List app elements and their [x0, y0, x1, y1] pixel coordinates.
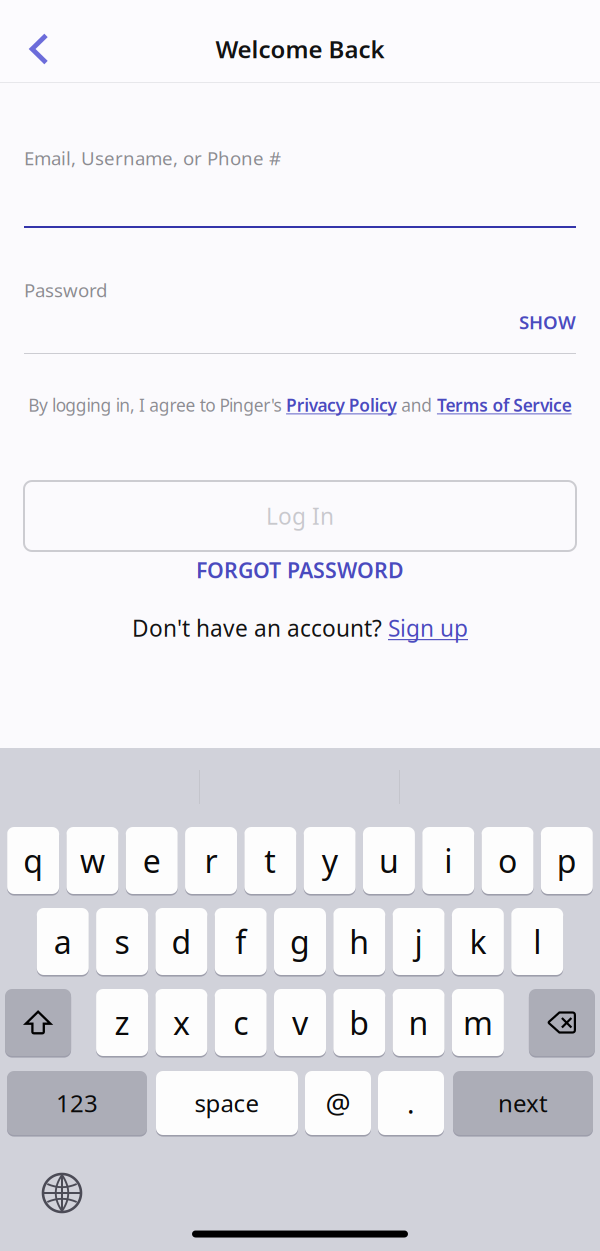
button[interactable]: space — [156, 1070, 298, 1136]
button[interactable]: next — [453, 1070, 593, 1136]
staticText: space — [194, 1087, 259, 1119]
button[interactable]: a — [37, 907, 89, 976]
button[interactable]: j — [393, 907, 445, 976]
button[interactable]: e — [126, 826, 178, 895]
button[interactable]: f — [215, 907, 267, 976]
staticText: s — [115, 920, 130, 963]
button[interactable]: SHOW — [24, 311, 576, 333]
button[interactable]: Terms of Service — [437, 393, 572, 416]
button[interactable]: c — [215, 988, 267, 1057]
staticText: w — [80, 839, 105, 882]
button[interactable]: v — [274, 988, 326, 1057]
button[interactable]: g — [274, 907, 326, 976]
staticText: c — [233, 1001, 248, 1044]
staticText: a — [54, 920, 72, 963]
button[interactable]: s — [96, 907, 148, 976]
staticText: Log In — [266, 501, 334, 531]
staticText: Privacy Policy — [286, 393, 397, 416]
staticText: SHOW — [519, 310, 576, 334]
staticText: h — [349, 920, 369, 963]
staticText: l — [533, 920, 541, 963]
button[interactable]: n — [393, 988, 445, 1057]
button[interactable]: r — [185, 826, 237, 895]
staticText: Don't have an account? — [132, 613, 388, 643]
staticText: g — [290, 920, 310, 963]
staticText: k — [469, 920, 486, 963]
staticText: u — [379, 839, 399, 882]
button[interactable]: m — [452, 988, 504, 1057]
button[interactable]: Privacy Policy — [286, 393, 397, 416]
staticText: q — [23, 839, 43, 882]
staticText: @ — [325, 1084, 350, 1122]
staticText: Welcome Back — [215, 33, 384, 65]
staticText: j — [415, 920, 423, 963]
staticText: Terms of Service — [437, 393, 572, 416]
button[interactable]: k — [452, 907, 504, 976]
button[interactable]: i — [422, 826, 474, 895]
button[interactable]: l — [511, 907, 563, 976]
button[interactable]: FORGOT PASSWORD — [150, 555, 450, 585]
button[interactable]: Back — [10, 18, 68, 80]
button[interactable]: o — [482, 826, 534, 895]
button[interactable]: h — [333, 907, 385, 976]
button[interactable]: @ — [305, 1070, 371, 1136]
button[interactable]: w — [66, 826, 118, 895]
staticText: o — [498, 839, 517, 882]
button[interactable]: Log In — [24, 481, 576, 551]
staticText: Sign up — [388, 613, 468, 643]
staticText: . — [407, 1084, 415, 1122]
button[interactable]: Delete — [529, 988, 595, 1057]
button[interactable]: b — [333, 988, 385, 1057]
staticText: Email, Username, or Phone # — [24, 146, 281, 170]
staticText: FORGOT PASSWORD — [196, 556, 404, 584]
staticText: x — [173, 1001, 190, 1044]
button[interactable]: z — [96, 988, 148, 1057]
button[interactable]: p — [541, 826, 593, 895]
staticText: y — [322, 839, 338, 882]
button[interactable]: 123 — [7, 1070, 147, 1136]
staticText: v — [292, 1001, 308, 1044]
button[interactable]: d — [155, 907, 207, 976]
staticText: and — [397, 393, 437, 416]
button[interactable]: u — [363, 826, 415, 895]
button[interactable]: Sign up — [388, 613, 468, 643]
staticText: t — [264, 839, 276, 882]
staticText: 123 — [56, 1087, 98, 1119]
button[interactable]: t — [244, 826, 296, 895]
staticText: b — [349, 1001, 369, 1044]
staticText: r — [204, 839, 217, 882]
staticText: e — [143, 839, 161, 882]
staticText: d — [171, 920, 191, 963]
staticText: Password — [24, 278, 107, 302]
staticText: n — [409, 1001, 429, 1044]
button[interactable]: . — [378, 1070, 444, 1136]
staticText: p — [557, 839, 577, 882]
staticText: i — [444, 839, 452, 882]
button[interactable]: y — [304, 826, 356, 895]
staticText: m — [463, 1001, 493, 1044]
button[interactable]: Next keyboard — [33, 1165, 91, 1221]
staticText: next — [498, 1087, 548, 1119]
staticText: f — [235, 920, 246, 963]
button[interactable]: q — [7, 826, 59, 895]
button[interactable]: x — [155, 988, 207, 1057]
staticText: By logging in, I agree to Pinger's — [28, 393, 286, 416]
button[interactable]: Shift — [5, 988, 71, 1057]
staticText: z — [115, 1001, 130, 1044]
